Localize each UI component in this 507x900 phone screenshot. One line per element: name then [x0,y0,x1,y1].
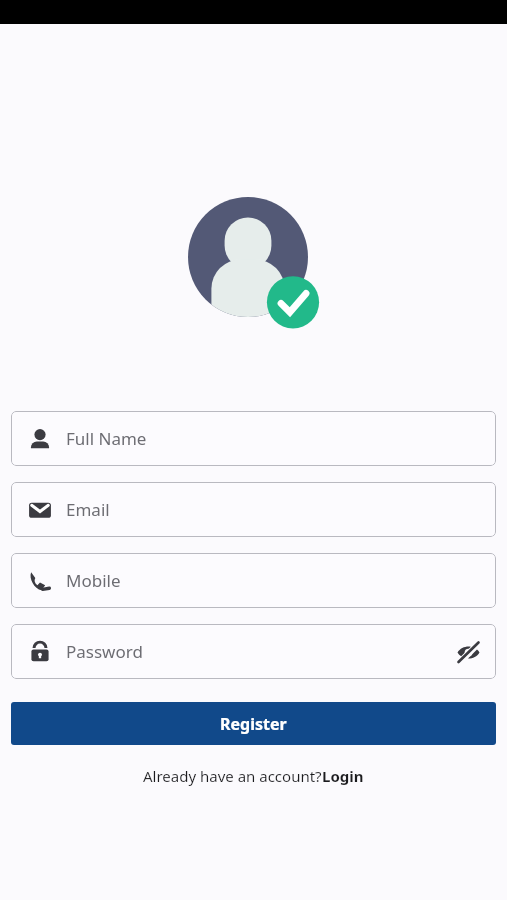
button[interactable]: Login [322,766,364,786]
staticText: Register [220,713,287,735]
button[interactable]: Mobile [11,553,496,608]
staticText: Full Name [66,427,147,450]
staticText: Already have an account? [143,766,322,786]
staticText: Login [322,766,364,786]
button[interactable]: Profile photo [188,197,320,329]
button[interactable]: Toggle password visibility [454,638,482,666]
button[interactable]: Password [11,624,496,679]
button[interactable]: Email [11,482,496,537]
staticText: Mobile [66,569,121,592]
button[interactable]: Register [11,702,496,745]
button[interactable]: Full Name [11,411,496,466]
staticText: Email [66,498,110,521]
staticText: Password [66,640,143,663]
